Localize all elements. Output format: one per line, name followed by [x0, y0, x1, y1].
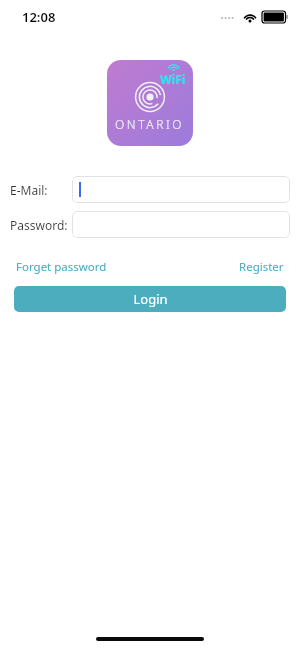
button[interactable]: Login	[14, 286, 286, 312]
button[interactable]: Register	[239, 259, 284, 275]
button[interactable]	[72, 211, 290, 238]
staticText: E-Mail:	[10, 182, 48, 198]
button[interactable]: Forget password	[16, 259, 107, 275]
staticText: WiFi	[160, 71, 186, 87]
button[interactable]	[72, 176, 290, 203]
staticText: Register	[239, 259, 284, 275]
staticText: ONTARIO	[115, 116, 185, 132]
staticText: 12:08	[22, 8, 56, 26]
staticText: Forget password	[16, 259, 107, 275]
staticText: Password:	[10, 217, 68, 233]
staticText: Login	[133, 290, 168, 308]
